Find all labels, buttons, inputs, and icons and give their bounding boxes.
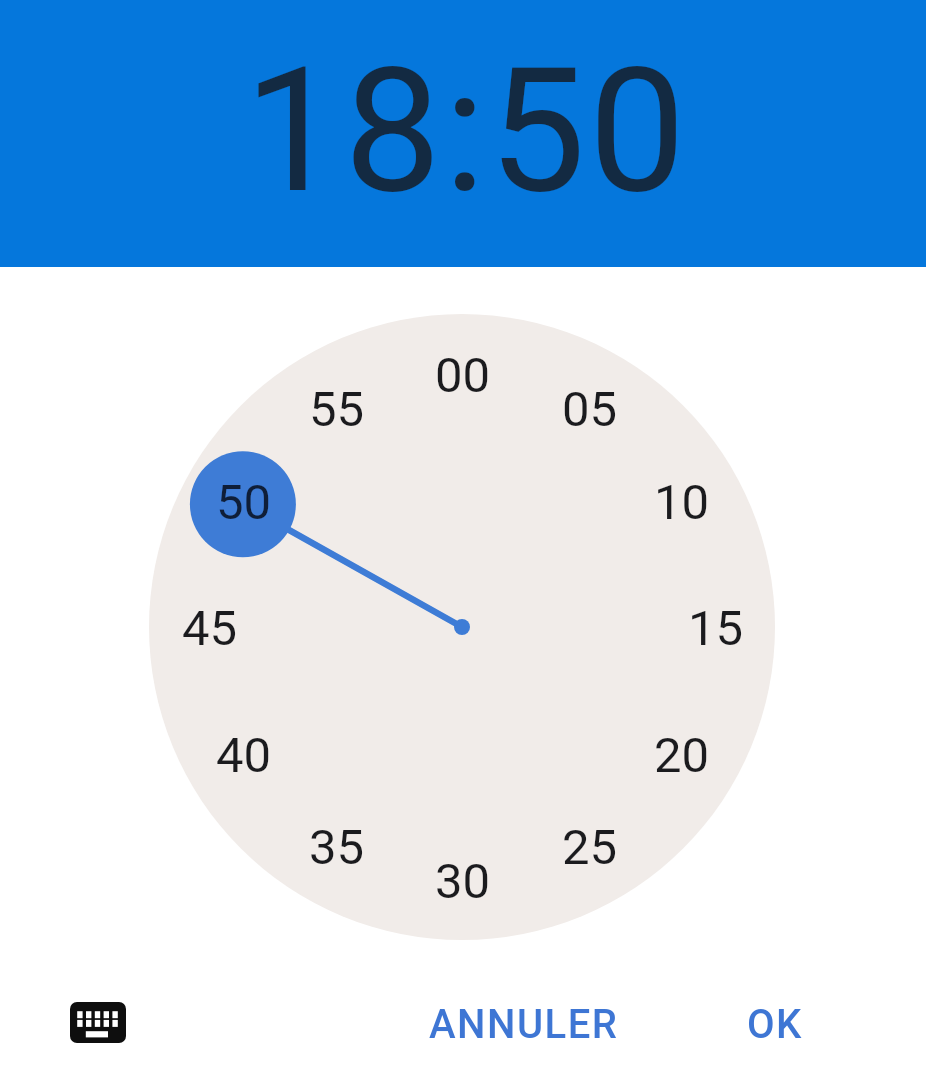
button[interactable]: 40	[199, 710, 289, 800]
staticText: 35	[309, 819, 365, 876]
button[interactable]: 18:50	[0, 0, 926, 267]
button[interactable]: 55	[292, 364, 382, 454]
staticText: 00	[435, 347, 491, 404]
button[interactable]: OK	[725, 994, 825, 1054]
button[interactable]: 20	[637, 710, 727, 800]
button[interactable]: 30	[418, 836, 508, 926]
staticText: 15	[688, 600, 744, 657]
button[interactable]: 00	[418, 330, 508, 420]
button[interactable]: 15	[671, 583, 761, 673]
button[interactable]: 45	[165, 583, 255, 673]
staticText: 18:50	[244, 30, 689, 233]
staticText: 20	[654, 727, 710, 784]
staticText: 05	[562, 381, 618, 438]
button[interactable]: 25	[545, 802, 635, 892]
button[interactable]: 05	[545, 364, 635, 454]
button[interactable]: ANNULER	[404, 994, 644, 1054]
staticText: OK	[747, 1001, 803, 1048]
staticText: 55	[309, 381, 365, 438]
button[interactable]: 10	[637, 457, 727, 547]
staticText: 30	[435, 853, 491, 910]
staticText: ANNULER	[429, 1001, 619, 1048]
button[interactable]: 35	[292, 802, 382, 892]
staticText: 40	[216, 727, 272, 784]
staticText: 50	[216, 474, 272, 531]
staticText: 45	[182, 600, 238, 657]
button[interactable]: 50	[199, 457, 289, 547]
staticText: 25	[562, 819, 618, 876]
staticText: 10	[654, 474, 710, 531]
button[interactable]	[62, 986, 134, 1058]
